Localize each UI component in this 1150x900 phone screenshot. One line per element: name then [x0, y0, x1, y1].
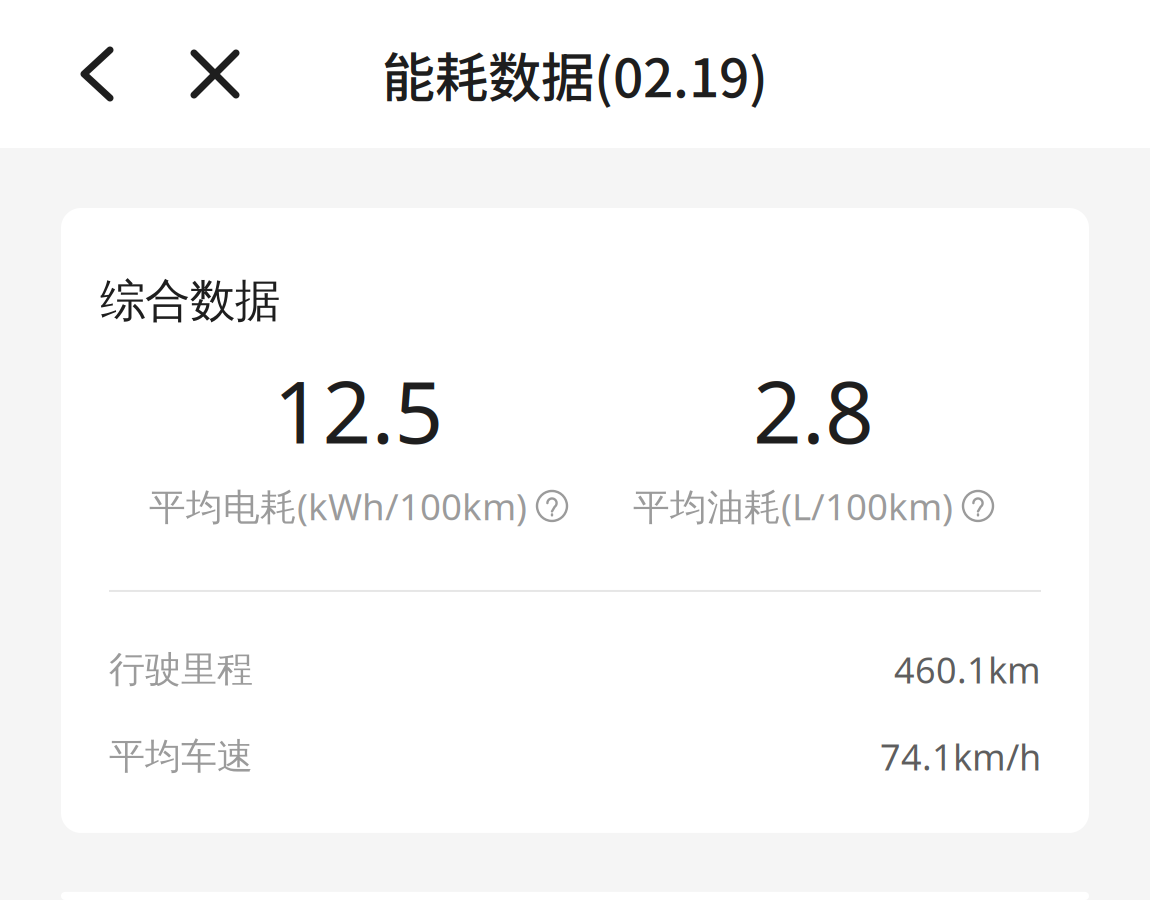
staticText: 74.1km/h: [880, 732, 1041, 780]
staticText: 平均油耗(L/100km): [633, 481, 953, 531]
staticText: 平均车速: [109, 734, 253, 778]
staticText: 综合数据: [100, 273, 280, 329]
staticText: 平均电耗(kWh/100km): [149, 481, 527, 531]
button[interactable]: Close: [185, 14, 245, 134]
button[interactable]: About 平均电耗(kWh/100km): [536, 490, 568, 522]
button[interactable]: About 平均油耗(L/100km): [962, 490, 994, 522]
staticText: 2.8: [753, 354, 874, 467]
staticText: 行驶里程: [109, 647, 253, 691]
staticText: 能耗数据(02.19): [382, 35, 768, 113]
button[interactable]: Back: [67, 14, 127, 134]
staticText: 460.1km: [894, 645, 1041, 693]
staticText: 12.5: [273, 354, 443, 467]
